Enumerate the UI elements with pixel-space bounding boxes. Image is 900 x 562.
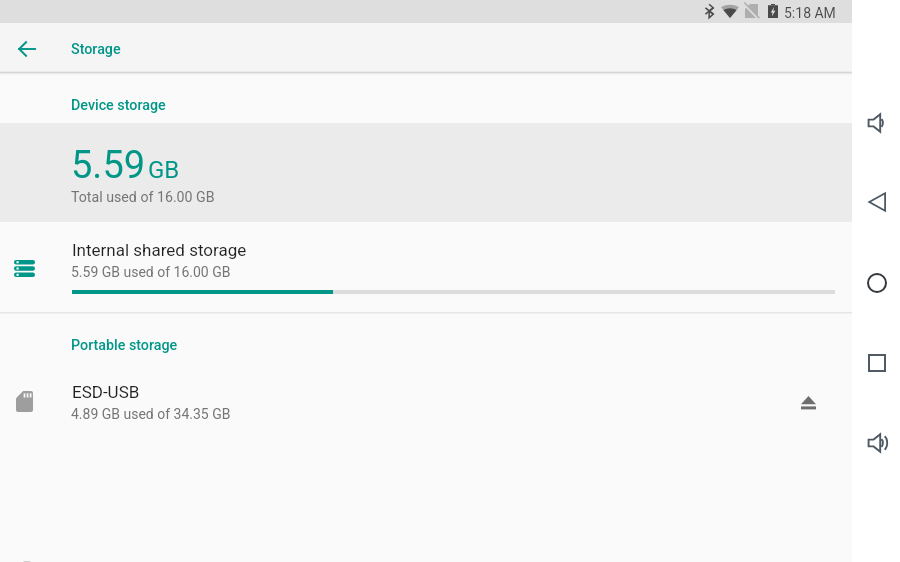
staticText: ESD-USB [72, 382, 140, 402]
staticText: Total used of 16.00 GB [71, 189, 215, 206]
button[interactable] [0, 366, 852, 438]
button[interactable]: Volume up [852, 419, 900, 467]
staticText: 4.89 GB used of 34.35 GB [71, 406, 231, 422]
staticText: GB [148, 156, 180, 184]
button[interactable]: Navigate up [3, 25, 51, 73]
staticText: Internal shared storage [72, 240, 247, 260]
staticText: Portable storage [71, 337, 178, 354]
button[interactable]: Eject [788, 382, 828, 422]
staticText: 5:18 AM [784, 5, 836, 21]
button[interactable]: Recents [852, 339, 900, 387]
button[interactable] [0, 222, 852, 312]
button[interactable]: Back [852, 178, 900, 226]
button[interactable]: Volume down [852, 99, 900, 147]
staticText: 5.59 [71, 143, 146, 188]
button[interactable]: Home [852, 259, 900, 307]
staticText: Device storage [71, 97, 166, 114]
staticText: 5.59 GB used of 16.00 GB [71, 264, 231, 280]
staticText: Storage [71, 41, 121, 58]
